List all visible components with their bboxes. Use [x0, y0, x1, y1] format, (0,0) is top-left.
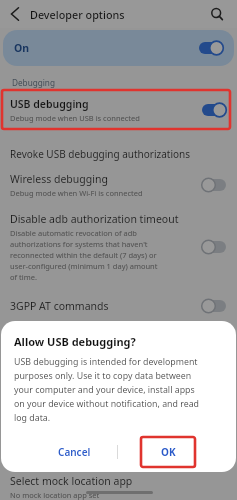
staticText: Disable adb authorization timeout: [10, 212, 179, 226]
staticText: Developer options: [30, 7, 125, 22]
button[interactable]: Wireless debugging: [0, 166, 237, 203]
button[interactable]: Select mock location app: [0, 470, 237, 500]
staticText: Disable automatic revocation of adb auth…: [10, 228, 158, 282]
staticText: Revoke USB debugging authorizations: [10, 147, 191, 161]
button[interactable]: [211, 8, 224, 21]
staticText: OK: [161, 445, 176, 459]
button[interactable]: OK: [141, 439, 196, 465]
staticText: Debug mode when Wi-Fi is connected: [10, 188, 143, 198]
staticText: On: [14, 41, 30, 55]
staticText: USB debugging: [10, 97, 89, 111]
staticText: Allow USB debugging?: [14, 334, 136, 349]
button[interactable]: Cancel: [41, 439, 107, 465]
staticText: Debug mode when USB is connected: [10, 113, 140, 123]
button[interactable]: On: [3, 30, 234, 66]
button[interactable]: [9, 7, 21, 21]
button[interactable]: Revoke USB debugging authorizations: [0, 133, 237, 174]
button[interactable]: 3GPP AT commands: [0, 292, 237, 319]
staticText: Cancel: [58, 445, 91, 459]
staticText: 3GPP AT commands: [10, 299, 109, 313]
staticText: Select mock location app: [10, 474, 133, 488]
staticText: Debugging: [12, 77, 55, 88]
staticText: Wireless debugging: [10, 172, 108, 186]
staticText: USB debugging is intended for developmen…: [14, 356, 199, 423]
staticText: No mock location app set: [10, 490, 100, 500]
button[interactable]: USB debugging: [0, 90, 237, 129]
button[interactable]: Disable adb authorization timeout: [0, 205, 237, 289]
